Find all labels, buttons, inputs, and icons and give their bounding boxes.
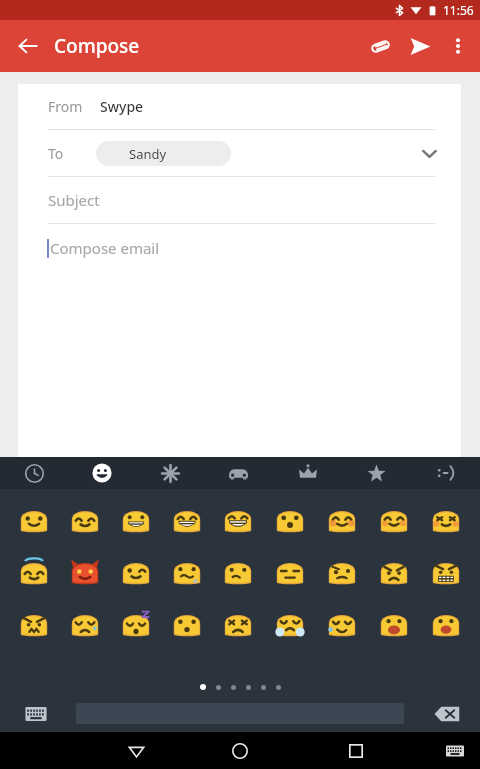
button[interactable]: Emoji 24 bbox=[264, 605, 316, 641]
button[interactable]: To bbox=[18, 130, 461, 176]
button[interactable]: Emoji 22 bbox=[161, 605, 212, 641]
button[interactable]: Favorites bbox=[342, 457, 411, 489]
button[interactable]: From bbox=[18, 84, 461, 129]
button[interactable]: Emoji 25 bbox=[316, 605, 368, 641]
button[interactable]: Emoji 14 bbox=[212, 553, 264, 589]
button[interactable]: Emoji 21 bbox=[110, 605, 161, 641]
button[interactable]: Emoji 2 bbox=[59, 501, 110, 537]
button[interactable]: Emoji 23 bbox=[212, 605, 264, 641]
button[interactable]: Emoji 3 bbox=[110, 501, 161, 537]
button[interactable]: Back bbox=[10, 28, 46, 64]
button[interactable]: Switch to keyboard bbox=[20, 698, 52, 730]
button[interactable]: Recent bbox=[0, 457, 68, 489]
button[interactable]: Places bbox=[273, 457, 342, 489]
button[interactable]: Emoji 16 bbox=[316, 553, 368, 589]
button[interactable]: Emoji 20 bbox=[59, 605, 110, 641]
button[interactable]: Emoji 1 bbox=[8, 501, 59, 537]
button[interactable]: Nature bbox=[136, 457, 204, 489]
button[interactable]: Emoji 11 bbox=[59, 553, 110, 589]
button[interactable]: Home bbox=[222, 733, 258, 769]
staticText: To bbox=[48, 144, 64, 163]
button[interactable]: Emoji 19 bbox=[8, 605, 59, 641]
button[interactable]: Back bbox=[118, 733, 154, 769]
button[interactable]: Subject bbox=[18, 177, 461, 223]
button[interactable]: Sandy bbox=[96, 141, 231, 166]
button[interactable]: Emoji 10 bbox=[8, 553, 59, 589]
staticText: 11:56 bbox=[443, 2, 474, 18]
button[interactable]: Objects bbox=[204, 457, 273, 489]
button[interactable]: Backspace bbox=[430, 697, 464, 731]
staticText: From bbox=[48, 97, 83, 116]
button[interactable]: Emoji 6 bbox=[264, 501, 316, 537]
button[interactable]: Attach file bbox=[360, 26, 400, 66]
button[interactable]: Smileys bbox=[68, 457, 136, 489]
button[interactable]: Emoji 13 bbox=[161, 553, 212, 589]
button[interactable]: More options bbox=[440, 28, 476, 64]
staticText: Swype bbox=[100, 97, 144, 116]
button[interactable]: Send bbox=[400, 26, 440, 66]
staticText: Sandy bbox=[129, 145, 167, 163]
button[interactable]: Emoji 4 bbox=[161, 501, 212, 537]
button[interactable]: Compose email bbox=[18, 224, 461, 272]
staticText: Compose bbox=[54, 33, 140, 59]
button[interactable]: Keyboard bbox=[440, 736, 470, 766]
button[interactable]: Emoji 8 bbox=[368, 501, 420, 537]
button[interactable]: Emoji 12 bbox=[110, 553, 161, 589]
staticText: Subject bbox=[48, 190, 100, 210]
button[interactable]: Emoji 17 bbox=[368, 553, 420, 589]
button[interactable]: Recent apps bbox=[338, 733, 374, 769]
button[interactable]: Emoji 26 bbox=[368, 605, 420, 641]
button[interactable]: Emoji 18 bbox=[420, 553, 472, 589]
button[interactable]: Emoji 15 bbox=[264, 553, 316, 589]
button[interactable]: Emoji 5 bbox=[212, 501, 264, 537]
button[interactable]: Expand recipients bbox=[415, 139, 443, 167]
button[interactable]: Emoji 9 bbox=[420, 501, 472, 537]
button[interactable]: Emoji 7 bbox=[316, 501, 368, 537]
staticText: Compose email bbox=[50, 238, 160, 258]
button[interactable]: Emoji 27 bbox=[420, 605, 472, 641]
button[interactable]: Emoticons bbox=[411, 457, 480, 489]
